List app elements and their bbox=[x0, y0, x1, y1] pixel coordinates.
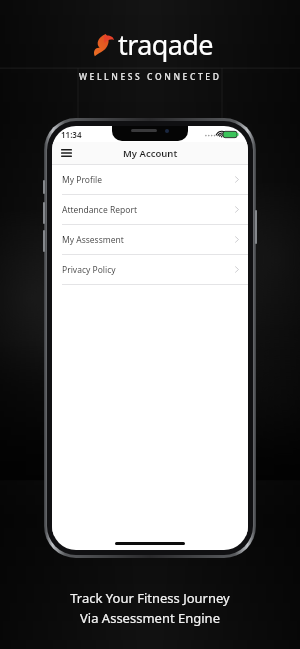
button[interactable]: My Assessment bbox=[52, 225, 248, 254]
staticText: My Assessment bbox=[62, 234, 124, 246]
button[interactable]: Open navigation menu bbox=[57, 144, 75, 162]
staticText: WELLNESS CONNECTED bbox=[79, 71, 222, 83]
button[interactable]: My Profile bbox=[52, 165, 248, 194]
button[interactable]: Attendance Report bbox=[52, 195, 248, 224]
button[interactable]: Privacy Policy bbox=[52, 255, 248, 284]
staticText: 11:34 bbox=[61, 129, 82, 140]
staticText: Attendance Report bbox=[62, 204, 137, 216]
staticText: Track Your Fitness Journey bbox=[70, 589, 230, 607]
staticText: Via Assessment Engine bbox=[80, 609, 220, 627]
staticText: traqade bbox=[118, 26, 213, 63]
staticText: My Profile bbox=[62, 174, 102, 186]
staticText: My Account bbox=[123, 147, 178, 160]
staticText: Privacy Policy bbox=[62, 264, 116, 276]
